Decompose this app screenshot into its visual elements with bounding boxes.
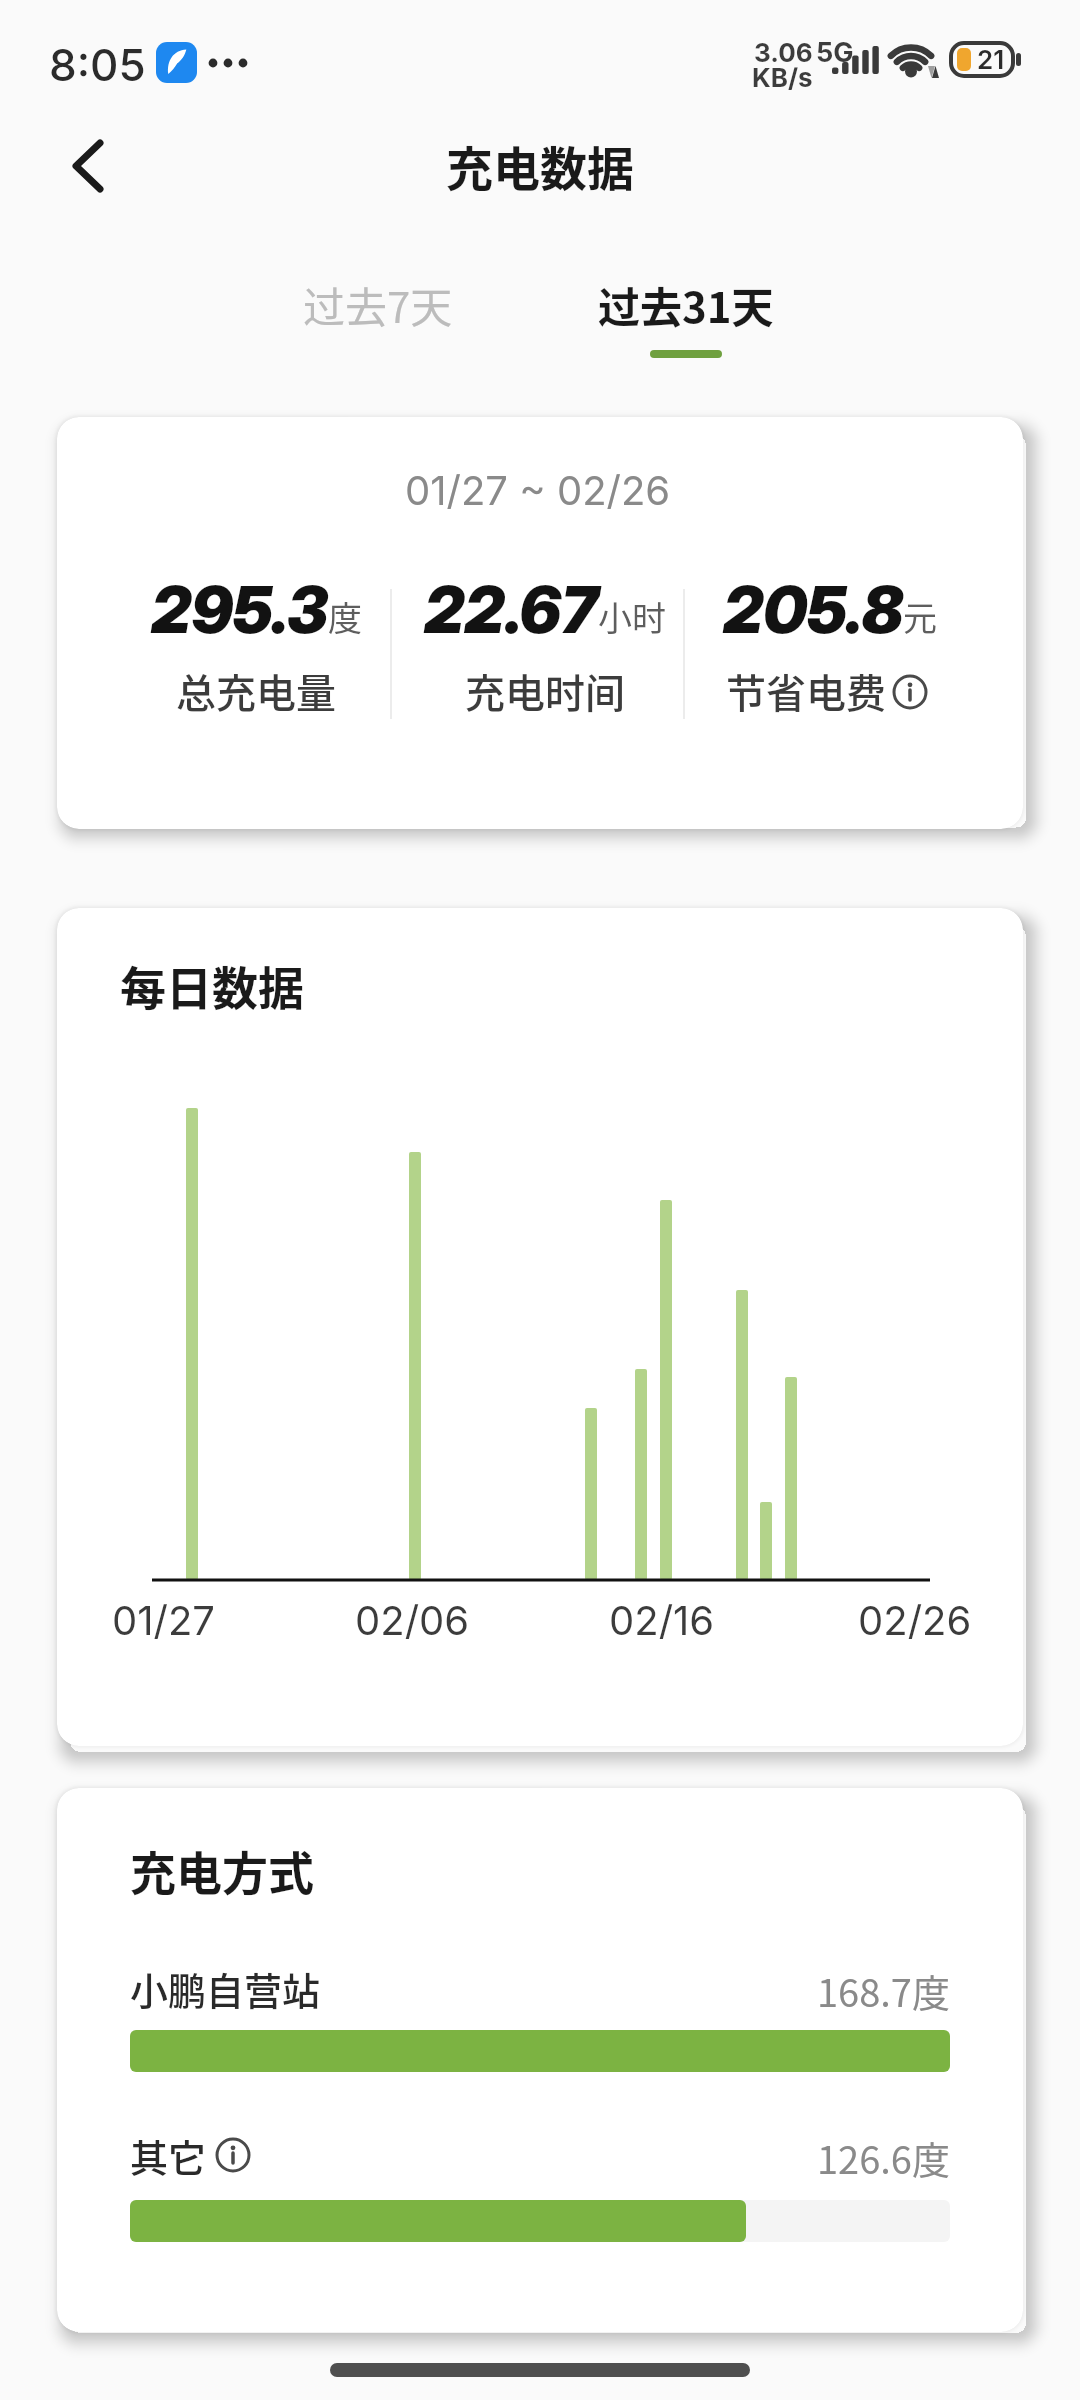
button[interactable] [58,135,120,197]
staticText: 8:05 [49,38,146,91]
staticText: 02/06 [355,1596,470,1644]
staticText: 每日数据 [120,952,304,1019]
staticText: 过去31天 [598,274,774,335]
staticText: 5G [816,36,854,69]
staticText: KB/s [752,62,813,92]
staticText: 充电时间 [465,662,625,720]
staticText: 02/26 [858,1596,972,1644]
staticText: 总充电量 [176,662,336,720]
staticText: 元 [903,592,937,641]
staticText: 01/27 [112,1596,215,1644]
button[interactable] [886,668,934,716]
staticText: 02/16 [609,1596,715,1644]
staticText: 205.8 [723,571,903,648]
staticText: 126.6度 [817,2130,950,2185]
staticText: 过去7天 [303,274,453,335]
button[interactable] [209,2131,257,2179]
staticText: 168.7度 [817,1963,950,2018]
staticText: 小时 [598,592,666,641]
staticText: 充电数据 [446,131,634,199]
staticText: 21 [977,44,1005,75]
staticText: 节省电费 [726,662,886,720]
staticText: 295.3 [151,571,328,648]
button[interactable]: 过去7天 [258,262,498,346]
staticText: 01/27 ~ 02/26 [405,466,671,514]
staticText: 3.06 [754,37,813,67]
staticText: 小鹏自营站 [130,1961,321,2016]
staticText: 其它 [130,2128,207,2183]
button[interactable]: 过去31天 [566,262,806,346]
staticText: 度 [328,592,362,641]
staticText: 22.67 [424,571,598,648]
staticText: 充电方式 [130,1837,314,1904]
